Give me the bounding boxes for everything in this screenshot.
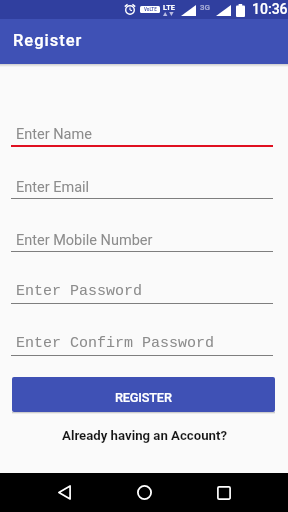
staticText: LTE [163,3,175,12]
button[interactable]: Enter Mobile Number [11,217,273,253]
staticText: 3G [200,3,210,12]
staticText: REGISTER [115,390,172,405]
staticText: Enter Name [16,126,92,143]
staticText: Register [13,31,83,50]
button[interactable]: REGISTER [12,377,275,412]
button[interactable]: Already having an Account? [62,428,227,443]
button[interactable] [44,473,84,512]
staticText: Enter Mobile Number [16,232,153,249]
button[interactable]: Enter Name [11,111,273,147]
button[interactable]: Enter Confirm Password [11,321,273,357]
button[interactable] [204,473,244,512]
staticText: Enter Email [16,179,90,196]
staticText: Enter Confirm Password [16,335,215,352]
button[interactable] [124,473,164,512]
button[interactable]: Enter Email [11,164,273,200]
staticText: VoLTE [144,7,157,12]
button[interactable]: Enter Password [11,269,273,305]
staticText: 10:36 [252,1,288,17]
staticText: Enter Password [16,283,143,300]
